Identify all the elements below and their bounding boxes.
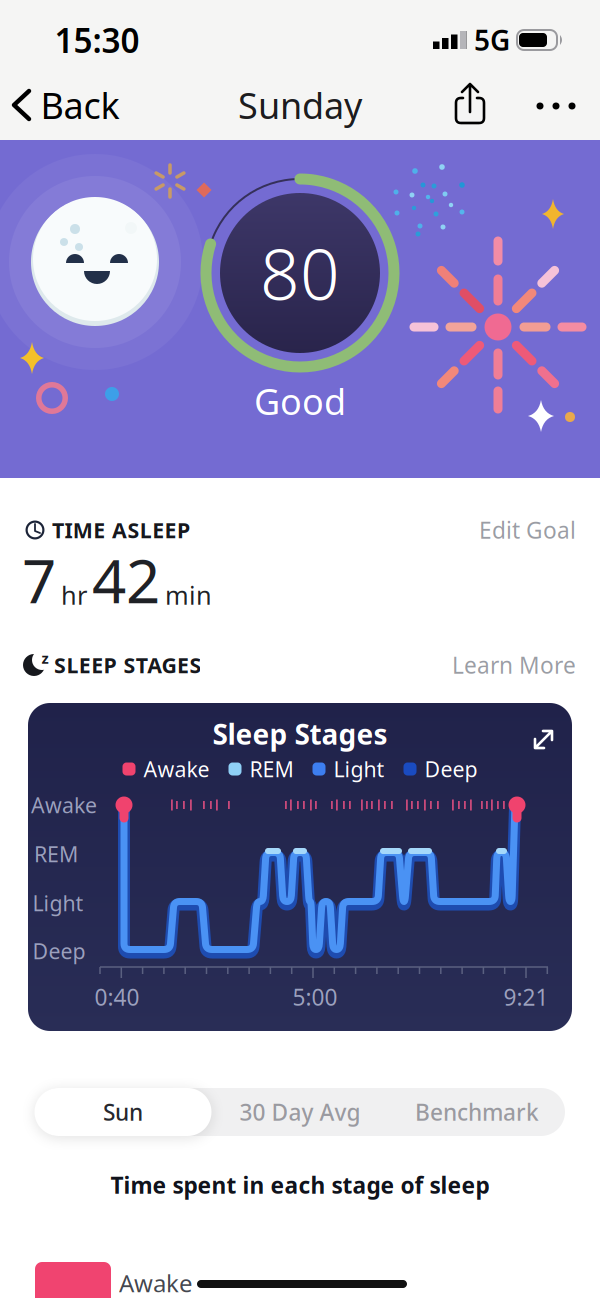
staticText: 30 Day Avg: [239, 1097, 360, 1127]
staticText: Sleep Stages: [212, 715, 387, 753]
button[interactable]: Learn More: [446, 645, 576, 685]
button[interactable]: Edit Goal: [456, 510, 576, 550]
staticText: Light: [32, 889, 83, 917]
staticText: Awake: [143, 755, 209, 783]
staticText: REM: [249, 755, 293, 783]
staticText: 9:21: [503, 982, 548, 1012]
staticText: min: [165, 578, 212, 612]
button[interactable]: [528, 84, 584, 128]
staticText: Time spent in each stage of sleep: [110, 1170, 489, 1200]
staticText: Good: [254, 377, 346, 425]
staticText: 42: [92, 540, 160, 620]
staticText: 7: [22, 540, 56, 620]
staticText: 5:00: [292, 982, 337, 1012]
button[interactable]: 30 Day Avg: [212, 1088, 388, 1136]
staticText: Awake: [31, 791, 97, 819]
staticText: REM: [34, 840, 78, 868]
staticText: SLEEP STAGES: [54, 651, 201, 679]
button[interactable]: Sun: [34, 1088, 211, 1136]
staticText: Sunday: [238, 81, 362, 129]
staticText: TIME ASLEEP: [52, 516, 190, 544]
staticText: Deep: [32, 937, 85, 965]
staticText: Sun: [103, 1097, 143, 1127]
button[interactable]: [2, 77, 122, 133]
staticText: z: [41, 648, 48, 668]
staticText: 80: [260, 227, 340, 319]
button[interactable]: [522, 717, 566, 761]
staticText: hr: [61, 578, 87, 612]
staticText: Learn More: [452, 650, 576, 680]
staticText: Light: [333, 755, 384, 783]
staticText: 0:40: [94, 982, 139, 1012]
staticText: Edit Goal: [479, 515, 576, 545]
staticText: Back: [40, 81, 119, 129]
staticText: Benchmark: [415, 1097, 539, 1127]
button[interactable]: Benchmark: [389, 1088, 565, 1136]
staticText: 15:30: [54, 18, 139, 62]
staticText: Awake: [119, 1267, 193, 1298]
staticText: 5G: [474, 21, 510, 59]
staticText: Deep: [424, 755, 477, 783]
button[interactable]: [448, 82, 492, 126]
